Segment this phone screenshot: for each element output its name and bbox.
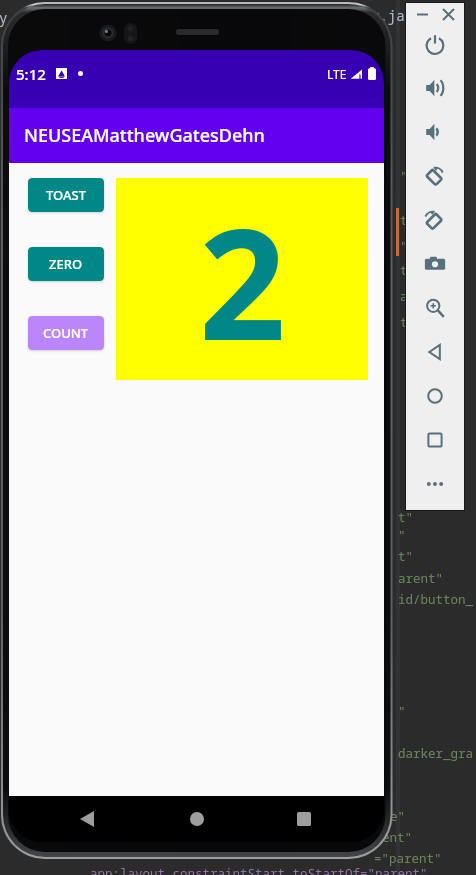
staticText: 5:12 xyxy=(16,64,46,84)
button[interactable]: Recents xyxy=(406,418,464,462)
button[interactable]: Home xyxy=(406,374,464,418)
staticText: " xyxy=(400,168,408,185)
staticText: ZERO xyxy=(49,255,83,273)
button[interactable]: Volume up xyxy=(406,66,464,110)
button[interactable]: Back xyxy=(406,330,464,374)
staticText: a xyxy=(400,288,408,305)
staticText: t" xyxy=(398,548,414,565)
staticText: v.ja xyxy=(371,6,405,25)
staticText: " xyxy=(398,527,406,544)
button[interactable]: ZERO xyxy=(28,247,104,281)
staticText: ="parent" xyxy=(374,850,442,867)
staticText: t xyxy=(400,314,408,331)
staticText: id/button_ xyxy=(398,591,474,608)
staticText: e" xyxy=(390,808,406,825)
staticText: t xyxy=(400,212,408,229)
staticText: t" xyxy=(398,509,414,526)
staticText: y xyxy=(0,8,8,27)
button[interactable]: More xyxy=(406,462,464,506)
staticText: app:layout_constraintStart_toStartOf="pa… xyxy=(90,865,428,875)
button[interactable]: COUNT xyxy=(28,316,104,350)
staticText: COUNT xyxy=(43,324,89,342)
staticText: NEUSEAMatthewGatesDehn xyxy=(24,123,265,148)
staticText: ent" xyxy=(382,829,413,846)
button[interactable]: Rotate right xyxy=(406,198,464,242)
staticText: " xyxy=(400,238,408,255)
staticText: TOAST xyxy=(46,186,86,204)
staticText: darker_gra xyxy=(398,745,474,762)
button[interactable]: Recents xyxy=(286,801,322,837)
staticText: LTE xyxy=(327,66,347,82)
staticText: t xyxy=(400,262,408,279)
button[interactable]: Screenshot xyxy=(406,242,464,286)
button[interactable]: Close xyxy=(438,7,458,22)
staticText: " xyxy=(398,703,406,720)
button[interactable]: Home xyxy=(179,801,215,837)
button[interactable]: Rotate left xyxy=(406,154,464,198)
button[interactable]: Power xyxy=(406,22,464,66)
button[interactable]: Zoom xyxy=(406,286,464,330)
button[interactable]: Minimize xyxy=(412,7,432,22)
button[interactable]: Volume down xyxy=(406,110,464,154)
button[interactable]: TOAST xyxy=(28,178,104,212)
staticText: arent" xyxy=(398,570,444,587)
staticText: 2 xyxy=(199,178,286,380)
button[interactable]: Back xyxy=(69,801,105,837)
